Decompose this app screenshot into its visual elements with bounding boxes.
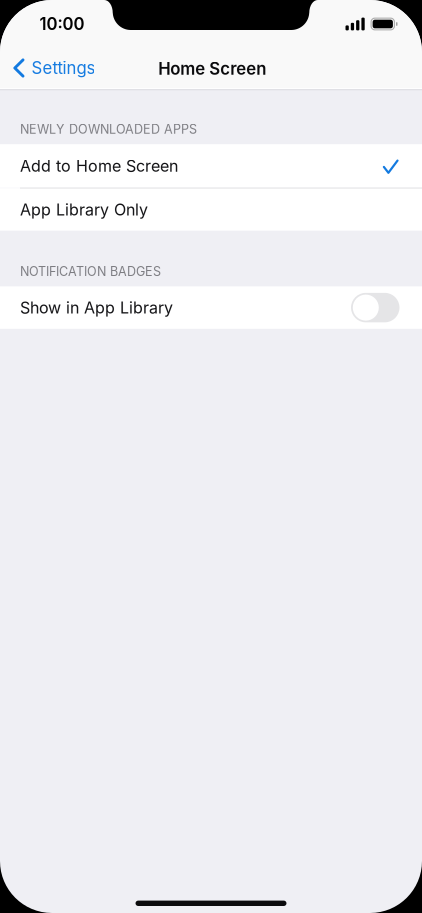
- button[interactable]: Back to Settings: [0, 46, 105, 90]
- button[interactable]: App Library Only: [0, 189, 422, 231]
- staticText: NOTIFICATION BADGES: [20, 264, 161, 279]
- button[interactable]: Show in App Library: [0, 286, 422, 329]
- staticText: Settings: [31, 58, 95, 78]
- staticText: NEWLY DOWNLOADED APPS: [20, 122, 197, 137]
- button[interactable]: Add to Home Screen: [0, 144, 422, 188]
- staticText: Add to Home Screen: [20, 156, 178, 176]
- staticText: 10:00: [39, 14, 84, 34]
- staticText: Home Screen: [158, 58, 266, 79]
- staticText: App Library Only: [20, 200, 148, 219]
- staticText: Show in App Library: [20, 298, 173, 317]
